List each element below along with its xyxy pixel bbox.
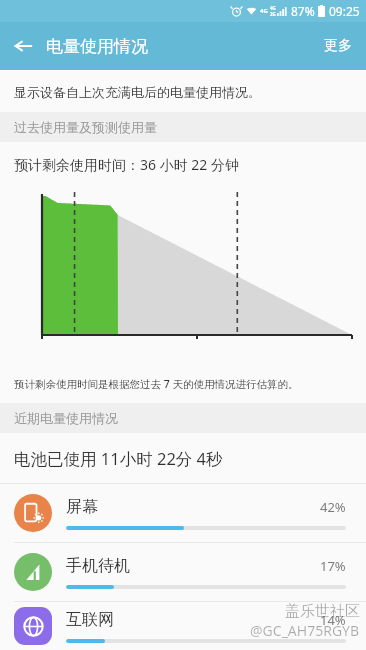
staticText: @GC_AH75RGYB <box>250 621 360 640</box>
button[interactable]: Back <box>0 22 46 70</box>
staticText: 4G <box>270 5 276 11</box>
staticText: 显示设备自上次充满电后的电量使用情况。 <box>14 84 261 100</box>
staticText: 电量使用情况 <box>46 36 148 57</box>
staticText: 近期电量使用情况 <box>14 410 118 426</box>
staticText: 预计剩余使用时间是根据您过去 7 天的使用情况进行估算的。 <box>14 377 299 391</box>
staticText: 过去使用量及预测使用量 <box>14 119 157 135</box>
staticText: 盖乐世社区 <box>285 602 360 621</box>
button[interactable]: 互联网 <box>0 602 366 650</box>
staticText: 互联网 <box>66 610 320 630</box>
staticText: 17% <box>320 557 346 575</box>
button[interactable]: 手机待机 <box>0 543 366 601</box>
staticText: 预计剩余使用时间：36 小时 22 分钟 <box>14 155 239 174</box>
staticText: 屏幕 <box>66 497 320 517</box>
staticText: 电池已使用 11小时 22分 4秒 <box>14 447 223 470</box>
staticText: 4G <box>260 7 268 15</box>
staticText: 更多 <box>324 37 352 55</box>
button[interactable]: 更多 <box>310 22 366 70</box>
staticText: 09:25 <box>329 3 360 19</box>
staticText: 2G <box>270 11 276 17</box>
staticText: 42% <box>320 498 346 516</box>
staticText: 87% <box>291 3 315 19</box>
staticText: 手机待机 <box>66 556 320 576</box>
staticText: 14% <box>320 611 346 629</box>
button[interactable]: 屏幕 <box>0 484 366 542</box>
